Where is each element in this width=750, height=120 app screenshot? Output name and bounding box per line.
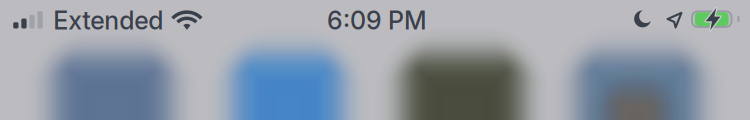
staticText: 6:09 PM	[327, 5, 427, 35]
staticText: Extended	[53, 5, 163, 35]
